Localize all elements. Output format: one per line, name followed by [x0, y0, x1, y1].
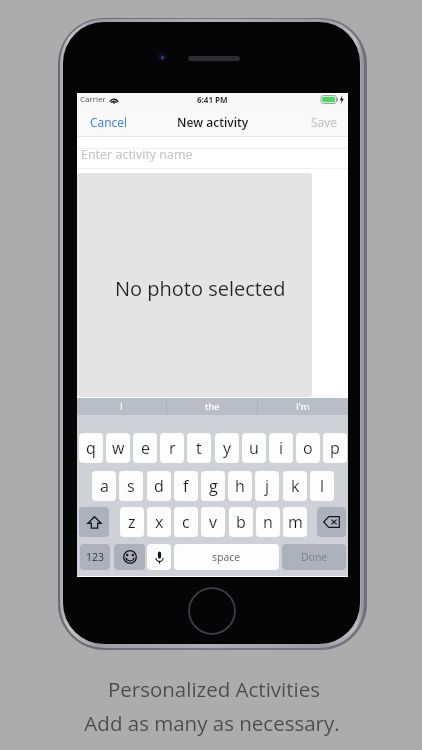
button[interactable]: a [92, 471, 116, 501]
staticText: Personalized Activities [3, 675, 422, 703]
staticText: w [112, 437, 125, 459]
staticText: Add as many as necessary. [1, 709, 422, 737]
button[interactable]: Home [188, 587, 236, 635]
staticText: the [205, 400, 220, 413]
staticText: Cancel [90, 114, 128, 130]
button[interactable]: z [120, 507, 144, 537]
staticText: 6:41 PM [197, 94, 228, 105]
staticText: space [212, 550, 241, 564]
button[interactable]: 123 [80, 544, 110, 570]
button[interactable]: Cancel [77, 107, 141, 137]
staticText: 123 [86, 550, 105, 564]
button[interactable]: s [119, 471, 143, 501]
staticText: c [182, 511, 190, 533]
staticText: f [183, 475, 189, 497]
button[interactable]: g [201, 471, 225, 501]
staticText: t [196, 437, 202, 459]
button[interactable]: y [215, 433, 239, 463]
staticText: x [155, 511, 164, 533]
button[interactable]: x [147, 507, 171, 537]
staticText: s [127, 475, 135, 497]
button[interactable]: Emoji [114, 544, 145, 570]
staticText: Done [301, 550, 328, 564]
button[interactable]: h [228, 471, 252, 501]
button[interactable]: e [133, 433, 157, 463]
staticText: I'm [296, 400, 310, 413]
staticText: Save [311, 114, 337, 130]
button[interactable]: l [310, 471, 334, 501]
button[interactable]: u [242, 433, 266, 463]
staticText: g [209, 475, 218, 497]
button[interactable]: Dictation [147, 544, 171, 570]
button[interactable]: Enter activity name [77, 137, 348, 173]
staticText: v [209, 511, 217, 533]
button[interactable]: I [77, 398, 166, 415]
staticText: z [128, 511, 136, 533]
button[interactable]: t [187, 433, 211, 463]
staticText: q [86, 437, 96, 459]
staticText: New activity [177, 114, 249, 130]
staticText: m [288, 511, 303, 533]
staticText: e [141, 437, 150, 459]
button[interactable]: space [174, 544, 279, 570]
staticText: u [249, 437, 259, 459]
button[interactable]: No photo selected [77, 173, 312, 397]
staticText: i [279, 437, 284, 459]
button[interactable]: the [167, 398, 257, 415]
staticText: a [100, 475, 109, 497]
staticText: b [236, 511, 246, 533]
staticText: h [235, 475, 245, 497]
staticText: k [291, 475, 300, 497]
button[interactable]: m [283, 507, 307, 537]
staticText: r [169, 437, 176, 459]
staticText: p [330, 437, 340, 459]
button[interactable]: Save [298, 107, 348, 137]
button[interactable]: w [106, 433, 130, 463]
button[interactable]: v [201, 507, 225, 537]
button[interactable]: f [174, 471, 198, 501]
button[interactable]: I'm [258, 398, 348, 415]
button[interactable]: Done [282, 544, 346, 570]
button[interactable]: j [255, 471, 279, 501]
button[interactable]: d [147, 471, 171, 501]
staticText: I [120, 400, 123, 413]
button[interactable]: Shift [79, 507, 109, 537]
button[interactable]: o [296, 433, 320, 463]
staticText: Carrier [80, 93, 106, 104]
staticText: n [263, 511, 273, 533]
staticText: y [223, 437, 232, 459]
button[interactable]: i [269, 433, 293, 463]
staticText: l [320, 475, 325, 497]
staticText: j [265, 475, 270, 497]
button[interactable]: n [256, 507, 280, 537]
button[interactable]: k [283, 471, 307, 501]
button[interactable]: Backspace [317, 507, 346, 537]
button[interactable]: q [79, 433, 103, 463]
staticText: Enter activity name [81, 146, 193, 163]
button[interactable]: r [160, 433, 184, 463]
button[interactable]: b [229, 507, 253, 537]
button[interactable]: c [174, 507, 198, 537]
button[interactable]: p [323, 433, 347, 463]
staticText: No photo selected [115, 275, 286, 302]
staticText: o [303, 437, 313, 459]
staticText: d [154, 475, 164, 497]
